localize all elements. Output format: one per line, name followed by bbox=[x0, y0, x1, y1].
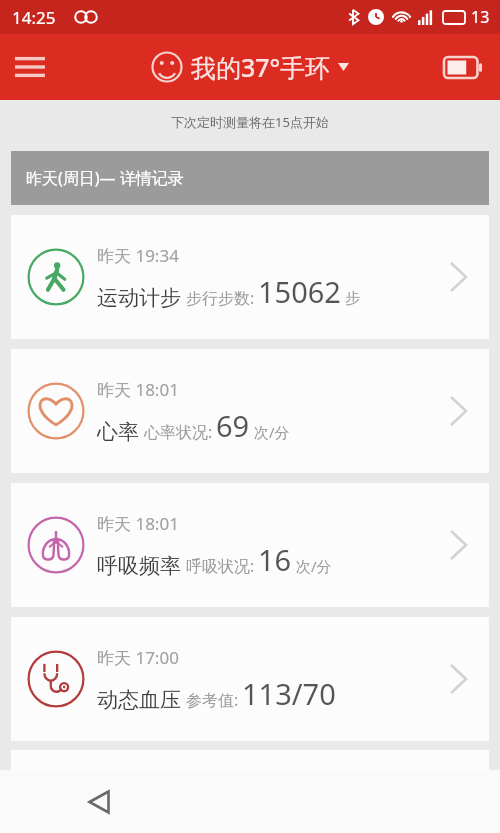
staticText: 运动计步 bbox=[97, 285, 181, 311]
staticText: 昨天 18:01 bbox=[97, 512, 179, 535]
button[interactable]: Back bbox=[75, 778, 123, 826]
other: Steps bbox=[27, 248, 85, 306]
other: Heart rate bbox=[27, 382, 85, 440]
staticText: 14:25 bbox=[12, 6, 56, 29]
staticText: 呼吸状况: bbox=[186, 555, 255, 577]
staticText: 昨天(周日)— 详情记录 bbox=[26, 167, 184, 189]
staticText: 13 bbox=[471, 6, 490, 28]
staticText: 参考值: bbox=[186, 689, 239, 711]
button[interactable]: Steps bbox=[11, 215, 489, 339]
staticText: 步 bbox=[345, 289, 360, 308]
button[interactable]: Menu bbox=[0, 37, 60, 97]
button[interactable]: Blood pressure bbox=[11, 617, 489, 741]
staticText: 昨天 18:01 bbox=[97, 378, 179, 401]
staticText: 15062 bbox=[258, 272, 341, 311]
other: Blood pressure bbox=[27, 650, 85, 708]
staticText: 69 bbox=[216, 406, 250, 445]
staticText: 心率状况: bbox=[144, 421, 213, 443]
other: Respiration bbox=[27, 516, 85, 574]
button[interactable]: 昨天(周日)— 详情记录 bbox=[11, 151, 489, 205]
button[interactable]: Battery bbox=[440, 50, 486, 84]
staticText: 次/分 bbox=[296, 556, 332, 576]
staticText: 下次定时测量将在15点开始 bbox=[0, 113, 500, 131]
staticText: 113/70 bbox=[242, 674, 336, 713]
staticText: 动态血压 bbox=[97, 687, 181, 713]
staticText: 心率 bbox=[97, 419, 139, 445]
staticText: 步行步数: bbox=[186, 287, 255, 309]
staticText: 呼吸频率 bbox=[97, 553, 181, 579]
staticText: 昨天 17:00 bbox=[97, 646, 179, 669]
staticText: 16 bbox=[258, 540, 292, 579]
staticText: 次/分 bbox=[254, 422, 290, 442]
staticText: 昨天 19:34 bbox=[97, 244, 179, 267]
button[interactable]: Respiration bbox=[11, 483, 489, 607]
button[interactable]: 我的37°手环 bbox=[151, 50, 349, 84]
button[interactable]: Heart rate bbox=[11, 349, 489, 473]
staticText: 我的37°手环 bbox=[191, 50, 331, 84]
